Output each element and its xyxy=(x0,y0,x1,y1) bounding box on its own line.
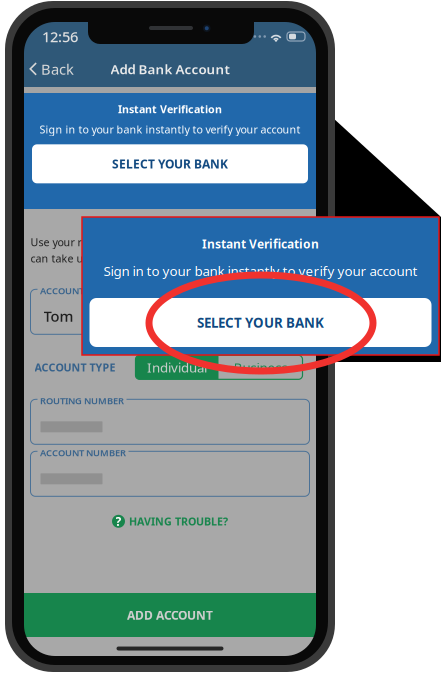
button[interactable]: Back xyxy=(24,53,74,85)
staticText: Add Bank Account xyxy=(110,60,229,78)
staticText: Use your routing and account numbers. Ve… xyxy=(30,235,292,249)
staticText: ADD ACCOUNT xyxy=(127,607,213,623)
staticText: Individual xyxy=(147,358,207,376)
button[interactable]: Individual xyxy=(135,355,218,379)
staticText: Instant Verification xyxy=(202,236,319,252)
staticText: ? xyxy=(115,513,121,529)
button[interactable]: Business xyxy=(218,355,302,379)
button[interactable]: SELECT YOUR BANK xyxy=(89,298,431,347)
staticText: Business xyxy=(233,358,287,376)
staticText: ACCOUNT HOLDER NAME xyxy=(40,284,152,297)
staticText: SELECT YOUR BANK xyxy=(197,314,324,331)
staticText: ROUTING NUMBER xyxy=(40,394,124,407)
staticText: HAVING TROUBLE? xyxy=(129,514,228,528)
staticText: can take up to 3 business days. xyxy=(30,251,189,265)
button[interactable]: ? xyxy=(30,496,309,529)
button[interactable]: ADD ACCOUNT xyxy=(24,593,316,637)
staticText: Back xyxy=(41,59,74,79)
staticText: Sign in to your bank instantly to verify… xyxy=(103,262,417,280)
staticText: Instant Verification xyxy=(118,102,222,116)
staticText: 12:56 xyxy=(42,27,78,46)
staticText: ACCOUNT NUMBER xyxy=(40,446,126,459)
staticText: SELECT YOUR BANK xyxy=(112,156,228,172)
staticText: ACCOUNT TYPE xyxy=(34,360,115,374)
staticText: Sign in to your bank instantly to verify… xyxy=(39,122,300,136)
button[interactable]: SELECT YOUR BANK xyxy=(32,144,308,183)
staticText: Tom xyxy=(43,306,73,326)
